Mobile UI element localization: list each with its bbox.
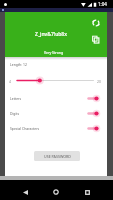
staticText: 20 <box>97 79 101 84</box>
staticText: USE PASSWORD <box>44 154 71 159</box>
button[interactable]: Digits <box>5 106 107 120</box>
button[interactable]: Home <box>49 185 63 199</box>
staticText: Very Strong <box>5 50 102 55</box>
staticText: Special Characters <box>10 126 40 131</box>
staticText: Z_jnv&7!ub8x <box>5 31 97 38</box>
staticText: Digits <box>10 111 20 116</box>
button[interactable]: Letters <box>5 91 107 105</box>
button[interactable]: USE PASSWORD <box>34 151 80 161</box>
staticText: Letters <box>10 96 22 101</box>
button[interactable]: Recent apps <box>80 185 94 199</box>
staticText: 4 <box>9 79 11 84</box>
button[interactable]: Special Characters <box>5 121 107 135</box>
button[interactable]: Copy password <box>89 33 103 47</box>
button[interactable]: Back <box>18 185 32 199</box>
staticText: Length: 12 <box>10 62 27 67</box>
button[interactable]: Regenerate password <box>89 16 103 30</box>
staticText: 1:04 <box>98 1 107 7</box>
